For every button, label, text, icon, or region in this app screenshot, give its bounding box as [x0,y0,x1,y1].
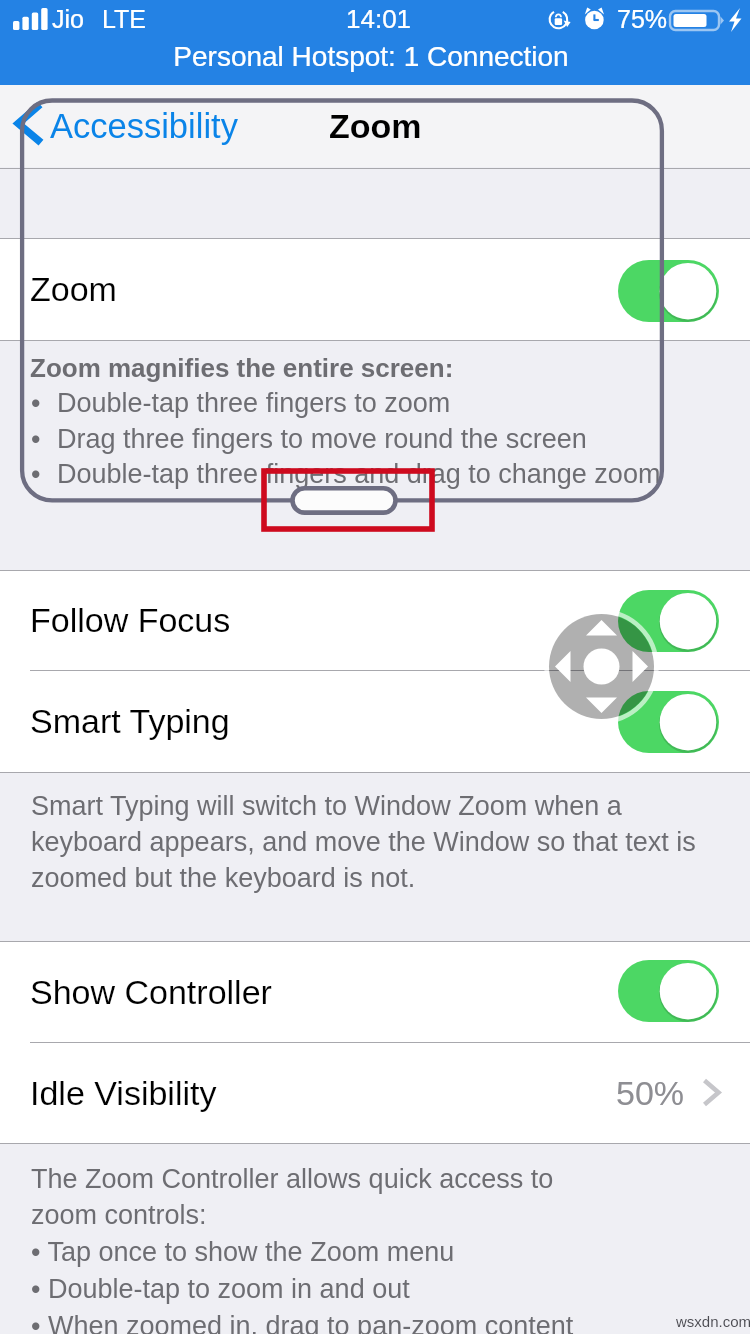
button[interactable]: Zoom [0,238,750,340]
staticText: Jio [52,5,84,33]
staticText: Show Controller [30,973,272,1011]
button[interactable]: Toggle on [618,590,719,652]
button[interactable]: Toggle on [618,260,719,322]
staticText: Drag three fingers to move round the scr… [57,424,587,454]
staticText: Follow Focus [30,601,231,639]
staticText: Idle Visibility [30,1074,217,1112]
staticText: • [31,459,41,489]
button[interactable]: Show Controller [0,942,750,1042]
staticText: • When zoomed in, drag to pan-zoom conte… [31,1311,574,1334]
staticText: Zoom magnifies the entire screen: [30,353,454,382]
staticText: Personal Hotspot: 1 Connection [0,41,746,72]
staticText: Double-tap three fingers and drag to cha… [57,459,661,489]
staticText: • [31,424,41,454]
button[interactable]: Toggle on [618,960,719,1022]
staticText: The Zoom Controller allows quick access … [31,1164,554,1194]
button[interactable]: Accessibility [0,85,750,167]
button[interactable]: Smart Typing [0,670,750,772]
staticText: zoomed but the keyboard is not. [31,863,416,893]
button[interactable]: Zoom controller [544,609,659,724]
button[interactable]: Idle Visibility [0,1042,750,1143]
staticText: Zoom [329,107,422,145]
staticText: 75% [617,5,668,33]
staticText: keyboard appears, and move the Window so… [31,827,696,857]
staticText: • Tap once to show the Zoom menu [31,1237,455,1267]
staticText: • [31,388,41,418]
staticText: • Double-tap to zoom in and out [31,1274,410,1304]
staticText: zoom controls: [31,1200,207,1230]
button[interactable]: Follow Focus [0,570,750,670]
staticText: LTE [102,5,146,33]
button[interactable]: Toggle on [618,691,719,753]
staticText: Accessibility [50,107,238,146]
staticText: 50% [616,1074,685,1112]
staticText: wsxdn.com [676,1313,750,1330]
staticText: Zoom [30,270,117,308]
staticText: Double-tap three fingers to zoom [57,388,451,418]
staticText: Smart Typing [30,702,230,740]
staticText: 14:01 [346,4,412,33]
staticText: Smart Typing will switch to Window Zoom … [31,791,622,821]
